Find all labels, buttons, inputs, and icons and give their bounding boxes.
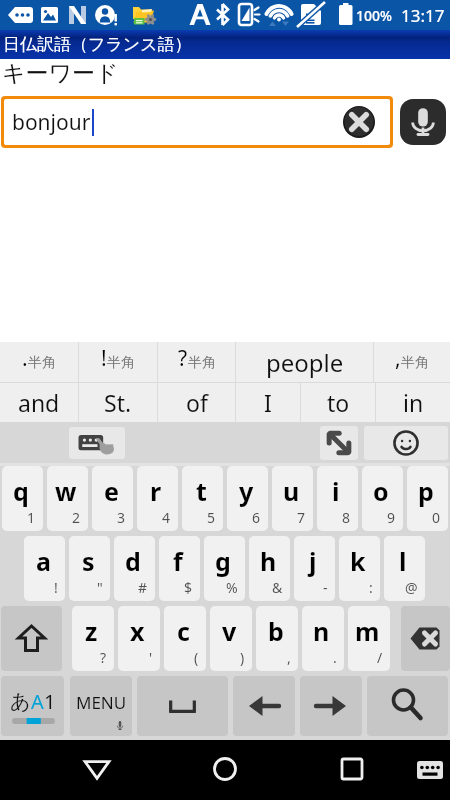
button[interactable]: s [69, 536, 110, 601]
button[interactable]: St. [79, 383, 157, 422]
staticText: 9 [387, 508, 396, 527]
button[interactable]: u [272, 466, 313, 531]
staticText: people [266, 346, 344, 379]
button[interactable]: Emoji [364, 426, 448, 460]
button[interactable]: Switch keyboard [403, 740, 450, 800]
button[interactable]: q [2, 466, 43, 531]
button[interactable]: h [249, 536, 290, 601]
button[interactable]: g [204, 536, 245, 601]
button[interactable]: t [182, 466, 223, 531]
button[interactable]: Resize keyboard [320, 426, 358, 460]
button[interactable]: f [159, 536, 200, 601]
staticText: . [22, 344, 28, 373]
button[interactable]: Voice input [400, 99, 446, 145]
staticText: ( [194, 648, 199, 667]
staticText: b [268, 614, 284, 648]
staticText: / [377, 648, 383, 667]
staticText: 100% [356, 6, 392, 25]
button[interactable]: Search [367, 676, 448, 736]
button[interactable]: c [164, 606, 206, 671]
staticText: 2 [72, 508, 81, 527]
staticText: e [104, 474, 119, 508]
staticText: 7 [297, 508, 306, 527]
staticText: 13:17 [401, 4, 445, 27]
button[interactable]: m [348, 606, 390, 671]
staticText: 半角 [107, 354, 135, 372]
staticText: I [264, 387, 272, 418]
button[interactable]: Shift [1, 606, 62, 671]
button[interactable]: Back [0, 740, 160, 800]
staticText: p [418, 474, 434, 508]
button[interactable]: j [294, 536, 335, 601]
button[interactable]: Backspace [401, 606, 450, 671]
button[interactable]: and [0, 383, 78, 422]
button[interactable]: Home [160, 740, 288, 800]
button[interactable]: あ [1, 676, 64, 736]
staticText: in [403, 387, 424, 418]
staticText: r [150, 474, 162, 508]
staticText: A [31, 688, 44, 715]
button[interactable]: Recent apps [288, 740, 403, 800]
button[interactable]: One-handed keyboard [69, 427, 125, 459]
button[interactable]: a [24, 536, 65, 601]
button[interactable]: l [384, 536, 425, 601]
staticText: q [13, 474, 29, 508]
staticText: bonjour [12, 108, 91, 137]
button[interactable]: of [158, 383, 235, 422]
button[interactable]: r [137, 466, 178, 531]
button[interactable]: ? [158, 342, 235, 382]
staticText: y [239, 474, 254, 508]
staticText: 1 [44, 688, 56, 715]
button[interactable]: Clear text [343, 106, 375, 138]
staticText: 日仏訳語（フランス語） [3, 34, 192, 55]
button[interactable]: Right [300, 676, 362, 736]
staticText: ! [101, 344, 107, 373]
button[interactable]: people [236, 342, 373, 382]
staticText: z [85, 614, 98, 648]
staticText: to [327, 387, 350, 418]
button[interactable]: to [301, 383, 375, 422]
button[interactable]: v [210, 606, 252, 671]
staticText: t [196, 474, 207, 508]
button[interactable]: o [362, 466, 403, 531]
button[interactable]: e [92, 466, 133, 531]
button[interactable]: n [302, 606, 344, 671]
button[interactable]: k [339, 536, 380, 601]
button[interactable]: z [72, 606, 114, 671]
button[interactable]: I [236, 383, 300, 422]
staticText: 0 [432, 508, 441, 527]
staticText: 8 [342, 508, 351, 527]
staticText: u [283, 474, 300, 508]
staticText: k [350, 544, 366, 578]
staticText: 5 [207, 508, 216, 527]
button[interactable]: i [317, 466, 358, 531]
button[interactable]: in [376, 383, 450, 422]
staticText: x [130, 614, 145, 648]
staticText: c [177, 614, 190, 648]
button[interactable]: p [407, 466, 448, 531]
staticText: St. [104, 387, 132, 418]
staticText: # [138, 578, 148, 597]
staticText: 1 [27, 508, 36, 527]
button[interactable]: d [114, 536, 155, 601]
button[interactable]: Space [137, 676, 228, 736]
staticText: a [36, 544, 51, 578]
button[interactable]: bonjour [4, 99, 390, 145]
button[interactable]: y [227, 466, 268, 531]
button[interactable]: Left [233, 676, 295, 736]
button[interactable]: x [118, 606, 160, 671]
staticText: 半角 [28, 354, 56, 372]
button[interactable]: b [256, 606, 298, 671]
button[interactable]: MENU [70, 676, 132, 736]
staticText: MENU [76, 691, 127, 714]
staticText: . [333, 648, 337, 667]
button[interactable]: ! [79, 342, 157, 382]
button[interactable]: . [0, 342, 78, 382]
button[interactable]: w [47, 466, 88, 531]
staticText: w [55, 474, 77, 508]
staticText: h [260, 544, 277, 578]
staticText: & [272, 578, 283, 597]
button[interactable]: , [374, 342, 450, 382]
staticText: ? [100, 648, 107, 667]
staticText: 半角 [188, 354, 216, 372]
